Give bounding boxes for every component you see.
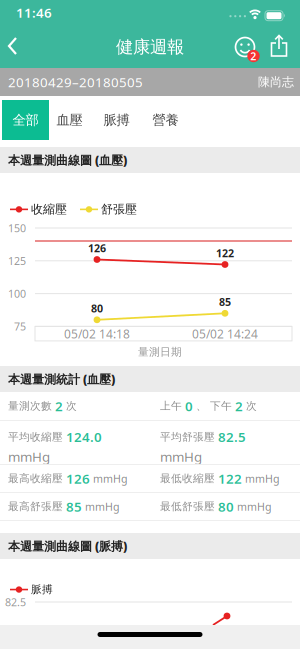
staticText: 平均收縮壓	[8, 430, 63, 443]
staticText: 122	[216, 246, 234, 260]
staticText: 126	[88, 241, 106, 255]
button[interactable]: 脈搏	[96, 100, 136, 140]
staticText: 85	[219, 295, 231, 309]
button[interactable]: Share	[268, 33, 296, 65]
button[interactable]: Back	[5, 34, 29, 58]
staticText: 量測次數	[8, 399, 52, 412]
staticText: 本週量測曲線圖 (脈搏)	[8, 538, 127, 554]
staticText: 本週量測曲線圖 (血壓)	[8, 152, 127, 168]
staticText: 次	[66, 399, 77, 412]
staticText: 122	[218, 470, 242, 487]
staticText: 05/02 14:18	[64, 326, 130, 342]
staticText: 2	[235, 397, 243, 415]
staticText: 舒張壓	[101, 202, 137, 217]
staticText: 脈搏	[31, 583, 53, 596]
staticText: 全部	[12, 112, 38, 128]
staticText: 脈搏	[103, 112, 129, 128]
staticText: 125	[8, 254, 26, 268]
staticText: 營養	[152, 112, 178, 128]
staticText: 健康週報	[116, 36, 184, 58]
staticText: 124.0	[66, 428, 102, 446]
staticText: 82.5	[218, 428, 246, 446]
staticText: mmHg	[237, 499, 272, 514]
staticText: 最高舒張壓	[8, 500, 63, 513]
button[interactable]: 營養	[145, 100, 185, 140]
staticText: 上午	[160, 399, 182, 412]
staticText: 80	[91, 301, 103, 315]
staticText: 75	[14, 319, 26, 333]
staticText: 05/02 14:24	[192, 326, 258, 342]
staticText: 126	[66, 470, 90, 487]
staticText: 次	[246, 399, 257, 412]
staticText: 82.5	[5, 595, 26, 609]
staticText: 0	[185, 397, 193, 415]
staticText: 下午	[210, 399, 232, 412]
staticText: 平均舒張壓	[160, 430, 215, 443]
staticText: 100	[8, 286, 26, 301]
staticText: 150	[8, 221, 26, 235]
staticText: 20180429–20180505	[8, 73, 143, 91]
staticText: 量測日期	[138, 345, 182, 358]
staticText: 、	[196, 399, 207, 412]
staticText: mmHg	[93, 471, 128, 486]
staticText: 80	[218, 498, 234, 515]
button[interactable]: 血壓	[49, 100, 89, 140]
staticText: 85	[66, 498, 82, 515]
staticText: 2	[250, 49, 256, 63]
staticText: 本週量測統計 (血壓)	[8, 371, 115, 387]
staticText: mmHg	[245, 471, 280, 486]
staticText: 血壓	[56, 112, 82, 128]
staticText: mmHg	[85, 499, 120, 514]
staticText: 收縮壓	[31, 202, 67, 217]
button[interactable]: Mood report	[230, 34, 264, 68]
staticText: 11:46	[16, 4, 52, 21]
staticText: 最低收縮壓	[160, 472, 215, 485]
staticText: 最低舒張壓	[160, 500, 215, 513]
staticText: 陳尚志	[258, 75, 294, 89]
staticText: 2	[55, 397, 63, 415]
staticText: mmHg	[160, 448, 202, 465]
button[interactable]: 全部	[2, 100, 49, 140]
staticText: mmHg	[8, 448, 50, 465]
staticText: 最高收縮壓	[8, 472, 63, 485]
